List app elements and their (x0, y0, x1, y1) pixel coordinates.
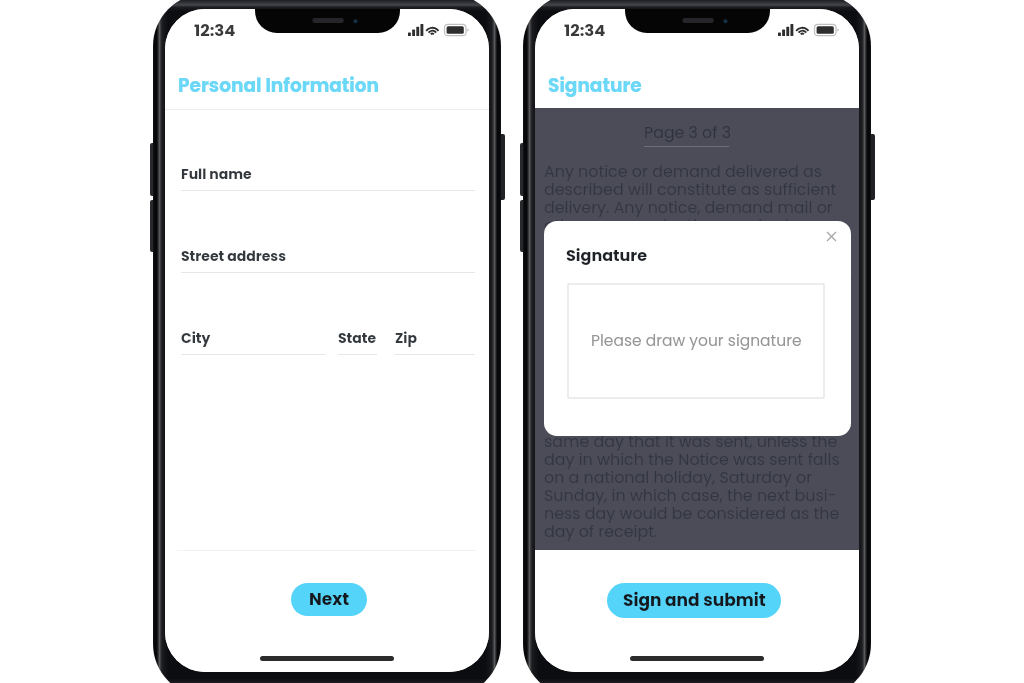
staticText: Sign and submit (623, 588, 766, 612)
button[interactable]: Sign and submit (607, 583, 781, 618)
staticText: Zip (395, 328, 417, 348)
staticText: Signature (548, 73, 642, 99)
staticText: Signature (566, 244, 648, 266)
button[interactable]: City (181, 327, 325, 359)
staticText: Page 3 of 3 (605, 121, 770, 143)
button[interactable]: Full name (181, 163, 475, 195)
staticText: Personal Information (178, 73, 380, 99)
staticText: Street address (181, 246, 286, 266)
button[interactable]: Close (818, 223, 844, 249)
button[interactable]: Next (291, 583, 367, 616)
button[interactable]: Please draw your signature (568, 284, 824, 398)
button[interactable]: State (338, 327, 377, 359)
staticText: 12:34 (194, 19, 236, 42)
staticText: Full name (181, 164, 252, 184)
button[interactable]: Street address (181, 245, 475, 277)
staticText: 12:34 (564, 19, 606, 42)
staticText: Next (309, 587, 350, 611)
staticText: Any notice or demand delivered as descri… (544, 160, 858, 543)
staticText: State (338, 328, 377, 348)
staticText: Please draw your signature (591, 330, 802, 352)
button[interactable]: Zip (395, 327, 475, 359)
staticText: City (181, 328, 211, 348)
